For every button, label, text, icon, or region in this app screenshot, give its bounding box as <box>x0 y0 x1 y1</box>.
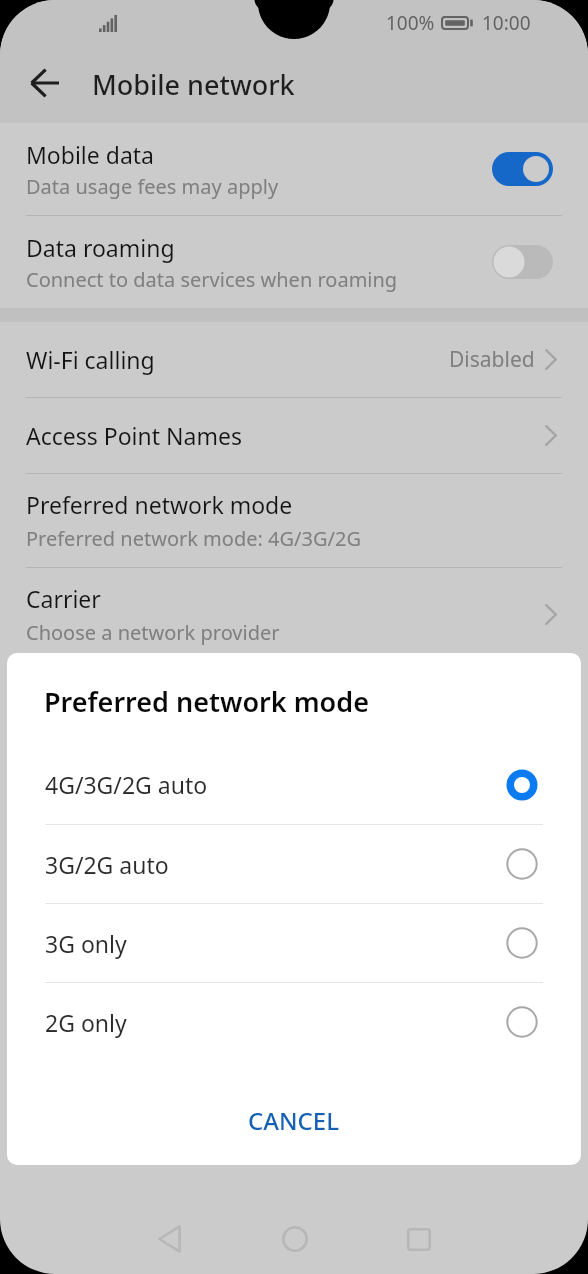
staticText: Mobile network <box>92 66 295 103</box>
button[interactable]: CANCEL <box>224 1094 364 1147</box>
button[interactable]: Access Point Names <box>0 398 588 473</box>
button[interactable]: Preferred network mode <box>0 474 588 567</box>
staticText: Mobile data <box>26 139 154 170</box>
button[interactable]: 3G/2G auto <box>7 825 581 903</box>
staticText: 4G/3G/2G auto <box>45 769 506 800</box>
button[interactable]: 3G only <box>7 904 581 982</box>
button[interactable]: Mobile data <box>0 123 588 215</box>
staticText: 3G only <box>45 928 506 959</box>
button[interactable]: Data roaming <box>0 216 588 308</box>
staticText: Preferred network mode: 4G/3G/2G <box>26 525 361 552</box>
button[interactable]: Wi-Fi calling <box>0 322 588 397</box>
staticText: Choose a network provider <box>26 619 280 646</box>
button[interactable]: Back <box>13 53 77 117</box>
staticText: 100% <box>386 10 435 36</box>
button[interactable]: 2G only <box>7 983 581 1061</box>
staticText: Data usage fees may apply <box>26 173 279 200</box>
staticText: Carrier <box>26 583 101 614</box>
staticText: 3G/2G auto <box>45 849 506 880</box>
staticText: Preferred network mode <box>44 683 369 720</box>
staticText: Access Point Names <box>26 420 545 451</box>
button[interactable]: Carrier <box>0 568 588 661</box>
button[interactable]: Back <box>133 1203 205 1274</box>
staticText: Disabled <box>449 345 535 374</box>
button[interactable]: 4G/3G/2G auto <box>7 745 581 824</box>
staticText: 2G only <box>45 1007 506 1038</box>
staticText: Wi-Fi calling <box>26 344 449 375</box>
staticText: Connect to data services when roaming <box>26 266 398 293</box>
button[interactable]: Home <box>259 1203 331 1274</box>
staticText: CANCEL <box>248 1104 340 1137</box>
staticText: Data roaming <box>26 232 175 263</box>
staticText: 10:00 <box>482 10 531 36</box>
staticText: Preferred network mode <box>26 489 293 520</box>
button[interactable]: Recents <box>383 1203 455 1274</box>
